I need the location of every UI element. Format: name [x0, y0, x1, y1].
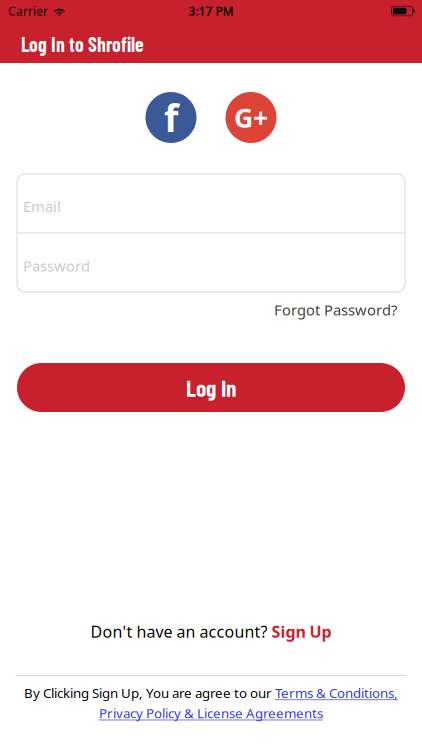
staticText: Terms & Conditions, — [275, 684, 398, 702]
staticText: 3:17 PM — [188, 3, 233, 19]
staticText: Email — [23, 196, 61, 216]
staticText: Forgot Password? — [274, 300, 397, 319]
button[interactable]: Password — [17, 233, 405, 292]
button[interactable]: Terms & Conditions, — [275, 684, 398, 702]
staticText: Don't have an account? — [90, 621, 271, 642]
button[interactable]: Sign Up — [271, 621, 331, 642]
button[interactable]: Log in with Google Plus — [225, 92, 276, 143]
button[interactable]: Log In — [17, 363, 405, 412]
staticText: Log In — [186, 373, 236, 401]
button[interactable]: Privacy Policy & License Agreements — [99, 704, 323, 722]
staticText: Sign Up — [271, 621, 331, 642]
button[interactable]: Log in with Facebook — [145, 92, 196, 143]
button[interactable]: Forgot Password? — [274, 300, 397, 319]
staticText: Password — [23, 256, 90, 275]
staticText: By Clicking Sign Up, You are agree to ou… — [24, 684, 275, 702]
staticText: G+ — [234, 100, 268, 135]
button[interactable]: Email — [17, 174, 405, 232]
staticText: f — [164, 93, 178, 142]
staticText: Privacy Policy & License Agreements — [99, 704, 323, 722]
staticText: Log In to Shrofile — [21, 32, 144, 56]
staticText: Carrier — [8, 3, 48, 19]
